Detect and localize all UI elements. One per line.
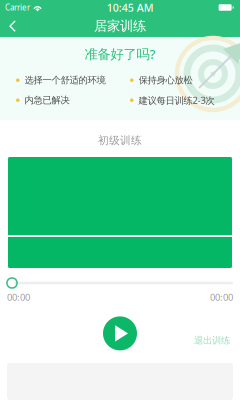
staticText: 00:00 xyxy=(210,291,233,303)
button[interactable]: Back xyxy=(0,15,27,36)
staticText: 内急已解决 xyxy=(25,94,70,106)
staticText: 居家训练 xyxy=(94,18,146,34)
staticText: 准备好了吗? xyxy=(84,45,155,63)
staticText: 保持身心放松 xyxy=(139,74,193,86)
staticText: 选择一个舒适的环境 xyxy=(25,74,106,86)
staticText: 00:00 xyxy=(7,291,30,303)
button[interactable]: 退出训练 xyxy=(189,317,233,350)
staticText: 初级训练 xyxy=(98,134,142,147)
staticText: 建议每日训练2-3次 xyxy=(139,94,215,106)
staticText: Carrier xyxy=(5,2,30,13)
staticText: 退出训练 xyxy=(194,335,230,346)
button[interactable]: Play xyxy=(103,316,137,350)
staticText: 10:45 AM xyxy=(107,0,154,15)
